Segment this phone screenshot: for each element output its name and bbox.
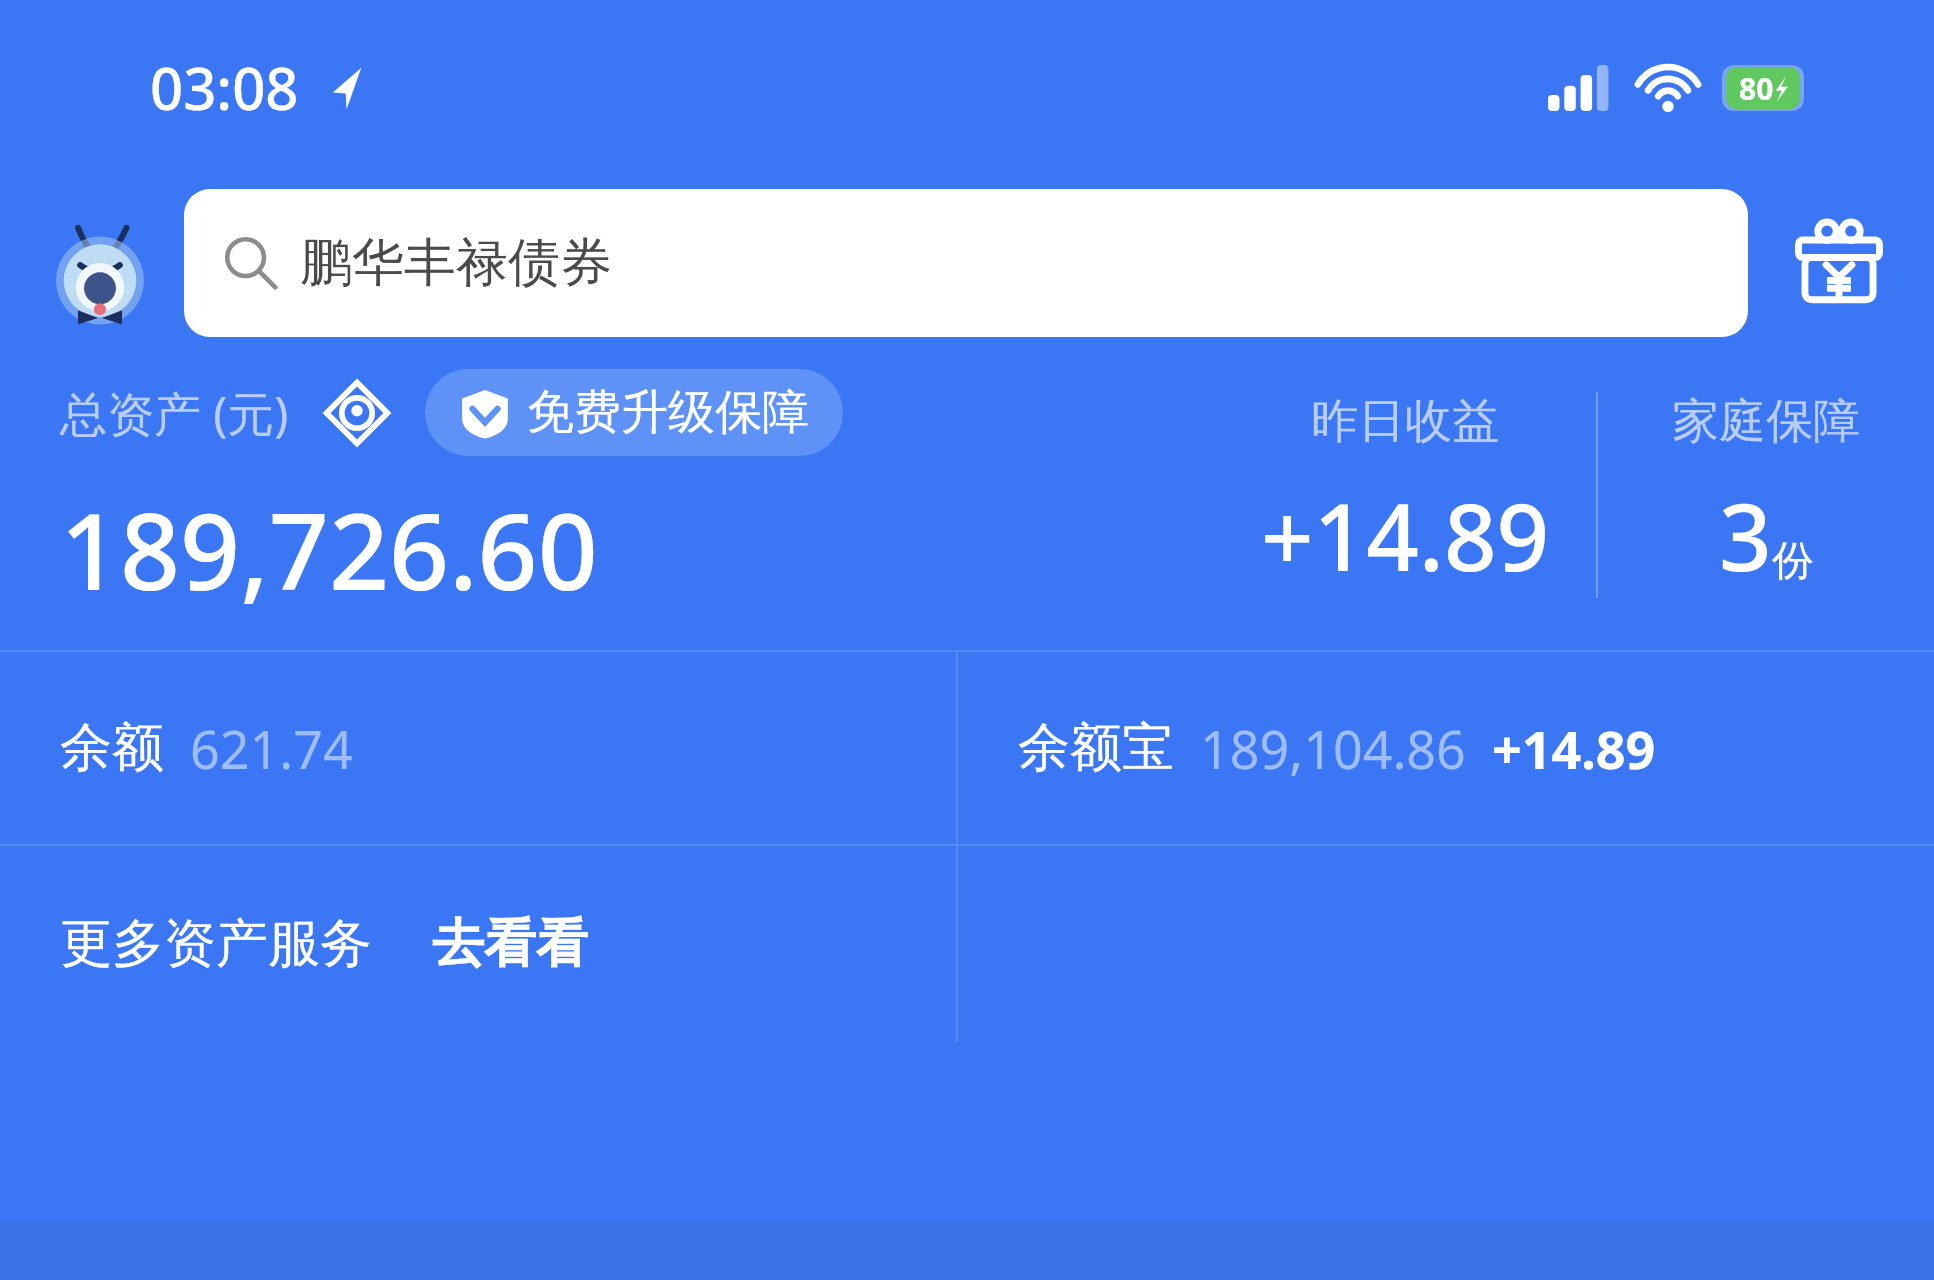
staticText: 03:08 bbox=[150, 48, 299, 127]
staticText: 更多资产服务 bbox=[60, 911, 372, 977]
button[interactable]: 鹏华丰禄债券 bbox=[184, 189, 1748, 337]
staticText: 份 bbox=[1772, 535, 1814, 588]
button[interactable]: 余额宝 bbox=[958, 652, 1934, 844]
button[interactable]: 免费升级保障 bbox=[425, 369, 843, 456]
button[interactable]: 更多资产服务 bbox=[0, 846, 956, 1042]
button[interactable]: 余额 bbox=[0, 652, 956, 844]
button[interactable]: Assistant bbox=[40, 203, 160, 323]
button[interactable]: 总资产 (元) bbox=[0, 350, 1214, 640]
staticText: 余额 bbox=[60, 715, 164, 781]
button[interactable]: Rewards bbox=[1784, 208, 1894, 318]
staticText: +14.89 bbox=[1261, 473, 1550, 598]
staticText: 去看看 bbox=[432, 911, 588, 977]
button[interactable]: 家庭保障 bbox=[1598, 350, 1934, 640]
staticText: 189,104.86 bbox=[1200, 713, 1466, 784]
staticText: 3 bbox=[1719, 473, 1772, 598]
staticText: 昨日收益 bbox=[1311, 392, 1499, 451]
button[interactable]: Toggle visibility bbox=[317, 373, 397, 453]
staticText: 鹏华丰禄债券 bbox=[300, 230, 612, 296]
staticText: +14.89 bbox=[1492, 713, 1656, 784]
staticText: 总资产 (元) bbox=[60, 381, 289, 445]
staticText: 80 bbox=[1739, 68, 1774, 109]
staticText: 189,726.60 bbox=[60, 478, 598, 621]
staticText: 余额宝 bbox=[1018, 715, 1174, 781]
staticText: 免费升级保障 bbox=[527, 383, 809, 442]
staticText: 621.74 bbox=[190, 713, 353, 784]
button[interactable]: 昨日收益 bbox=[1214, 350, 1596, 640]
staticText: 家庭保障 bbox=[1672, 392, 1860, 451]
